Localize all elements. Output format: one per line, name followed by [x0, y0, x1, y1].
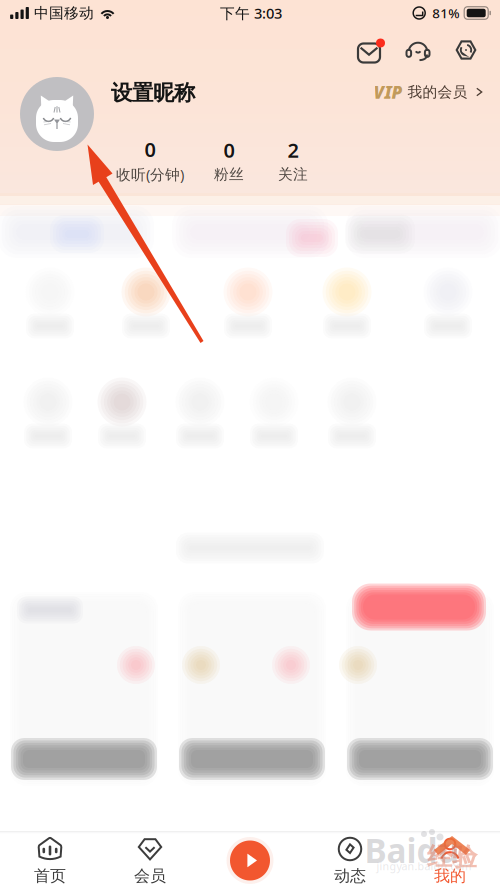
staticText: 81%: [432, 4, 459, 22]
staticText: 我的会员: [407, 83, 467, 101]
staticText: Baidu: [364, 828, 459, 872]
button[interactable]: 2: [274, 137, 312, 183]
staticText: 会员: [134, 866, 166, 886]
staticText: 我的: [434, 866, 466, 886]
staticText: 首页: [34, 866, 66, 886]
staticText: 动态: [334, 866, 366, 886]
button[interactable]: 首页: [0, 831, 100, 889]
staticText: 下午 3:03: [220, 3, 282, 23]
button[interactable]: Play: [200, 831, 300, 889]
staticText: 收听(分钟): [116, 164, 184, 184]
staticText: jingyan.baidu.com: [376, 859, 471, 873]
staticText: 设置昵称: [111, 80, 195, 106]
button[interactable]: 会员: [100, 831, 200, 889]
staticText: VIP: [373, 80, 402, 103]
staticText: 粉丝: [214, 165, 244, 183]
button[interactable]: Settings: [449, 35, 483, 65]
staticText: 中国移动: [34, 4, 94, 22]
staticText: 0: [223, 137, 234, 163]
button[interactable]: Customer service: [401, 36, 435, 66]
button[interactable]: 0: [112, 136, 188, 184]
button[interactable]: 我的: [400, 831, 500, 889]
button[interactable]: Messages: [354, 35, 388, 65]
staticText: 关注: [278, 165, 308, 183]
staticText: 经验: [427, 841, 477, 872]
staticText: 2: [287, 137, 298, 163]
button[interactable]: Avatar: [20, 77, 94, 151]
button[interactable]: 动态: [300, 831, 400, 889]
button[interactable]: VIP: [367, 74, 488, 109]
button[interactable]: 0: [210, 137, 248, 183]
staticText: 0: [144, 136, 155, 163]
